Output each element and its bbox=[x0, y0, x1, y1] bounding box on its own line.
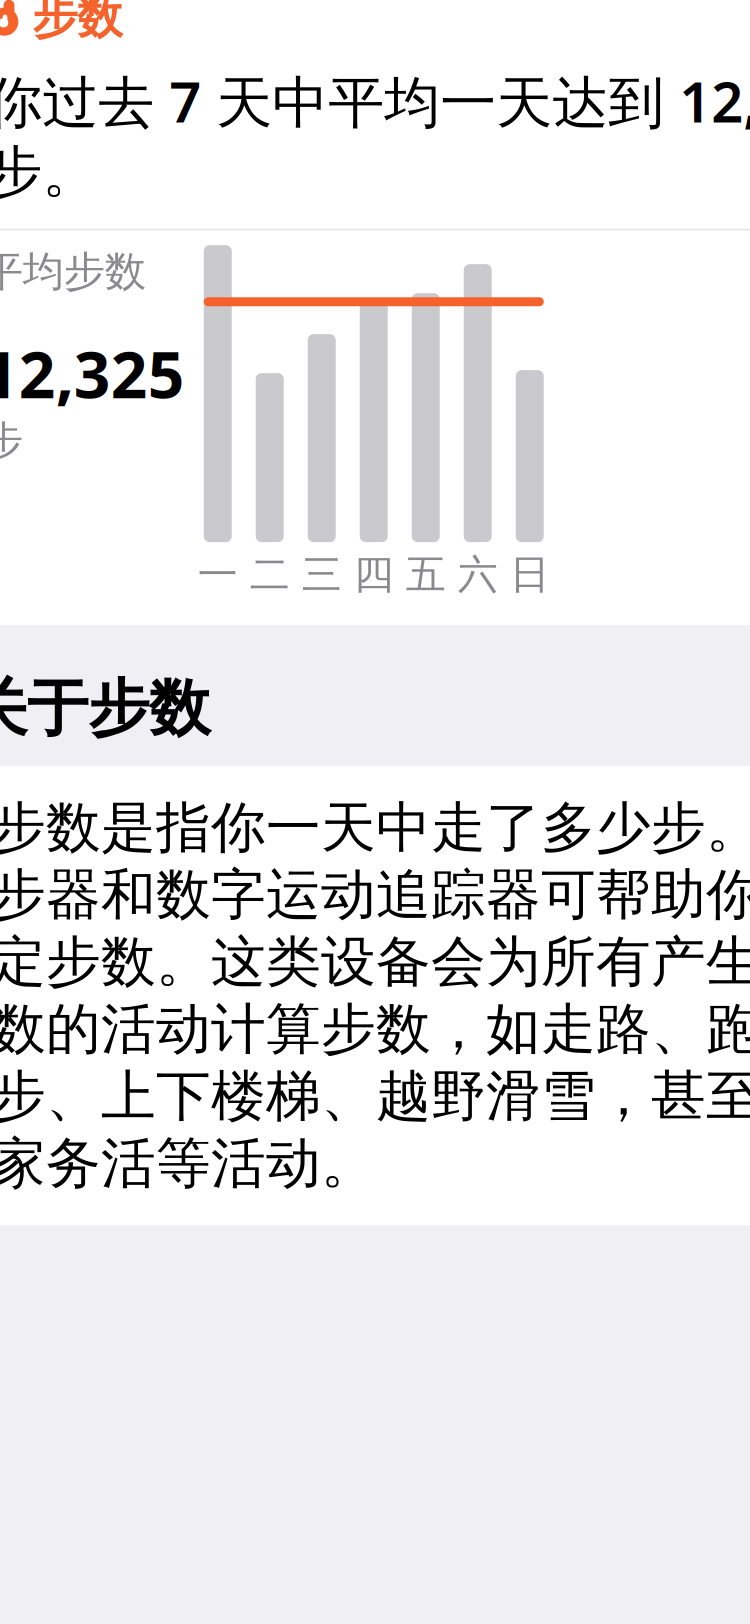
staticText: 三 bbox=[302, 550, 342, 599]
staticText: 平均步数 bbox=[0, 246, 146, 297]
staticText: 五 bbox=[406, 550, 446, 599]
staticText: 步数是指你一天中走了多少步。计步器和数字运动追踪器可帮助你确定步数。这类设备会为… bbox=[0, 794, 750, 1197]
staticText: 日 bbox=[510, 550, 550, 599]
staticText: 六 bbox=[458, 550, 498, 599]
staticText: 四 bbox=[354, 550, 394, 599]
staticText: 步数 bbox=[32, 0, 122, 46]
staticText: 你过去 7 天中平均一天达到 12,325 步。 bbox=[0, 64, 750, 207]
staticText: 二 bbox=[250, 550, 290, 599]
staticText: 关于步数 bbox=[0, 671, 210, 746]
staticText: 步 bbox=[0, 416, 23, 467]
staticText: 一 bbox=[198, 550, 238, 599]
staticText: 12,325 bbox=[0, 331, 185, 416]
